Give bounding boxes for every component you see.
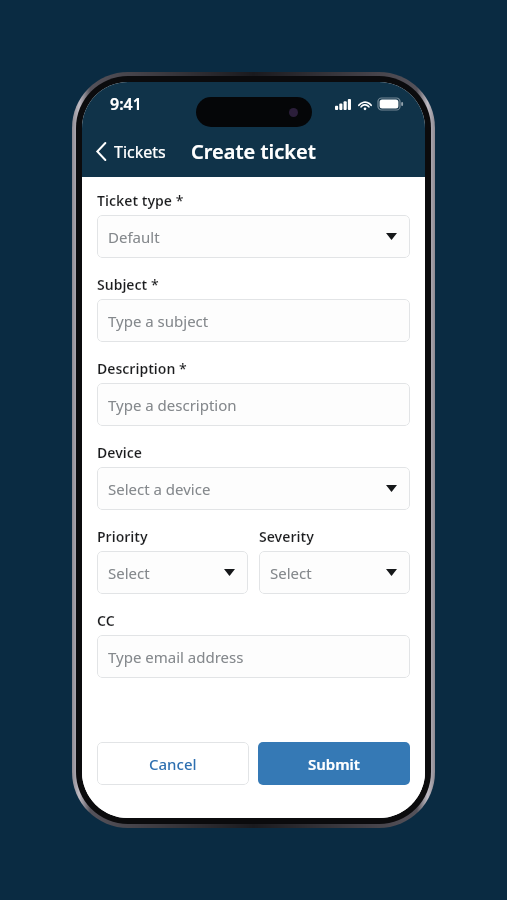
staticText: Select a device xyxy=(108,479,211,499)
staticText: Submit xyxy=(308,754,360,774)
staticText: Tickets xyxy=(114,141,166,163)
staticText: Severity xyxy=(259,527,314,546)
button[interactable]: Open Select a device dropdown xyxy=(97,467,410,510)
staticText: Select xyxy=(108,563,150,583)
staticText: Cancel xyxy=(149,754,197,774)
button[interactable]: Cancel xyxy=(97,742,249,785)
staticText: Type a subject xyxy=(108,311,209,331)
staticText: Ticket type * xyxy=(97,191,184,210)
staticText: Default xyxy=(108,227,160,247)
staticText: Description * xyxy=(97,359,187,378)
button[interactable]: Submit xyxy=(258,742,410,785)
button[interactable]: Type a description xyxy=(97,383,410,426)
button[interactable]: Open Select dropdown xyxy=(259,551,410,594)
button[interactable]: Tickets xyxy=(82,126,176,177)
staticText: CC xyxy=(97,611,115,630)
staticText: Type a description xyxy=(108,395,237,415)
staticText: Create ticket xyxy=(191,138,316,165)
staticText: 9:41 xyxy=(110,93,142,115)
staticText: Type email address xyxy=(108,647,244,667)
button[interactable]: Open Default dropdown xyxy=(97,215,410,258)
button[interactable]: Type email address xyxy=(97,635,410,678)
staticText: Subject * xyxy=(97,275,159,294)
staticText: Device xyxy=(97,443,142,462)
staticText: Priority xyxy=(97,527,148,546)
staticText: Select xyxy=(270,563,312,583)
button[interactable]: Type a subject xyxy=(97,299,410,342)
button[interactable]: Open Select dropdown xyxy=(97,551,248,594)
